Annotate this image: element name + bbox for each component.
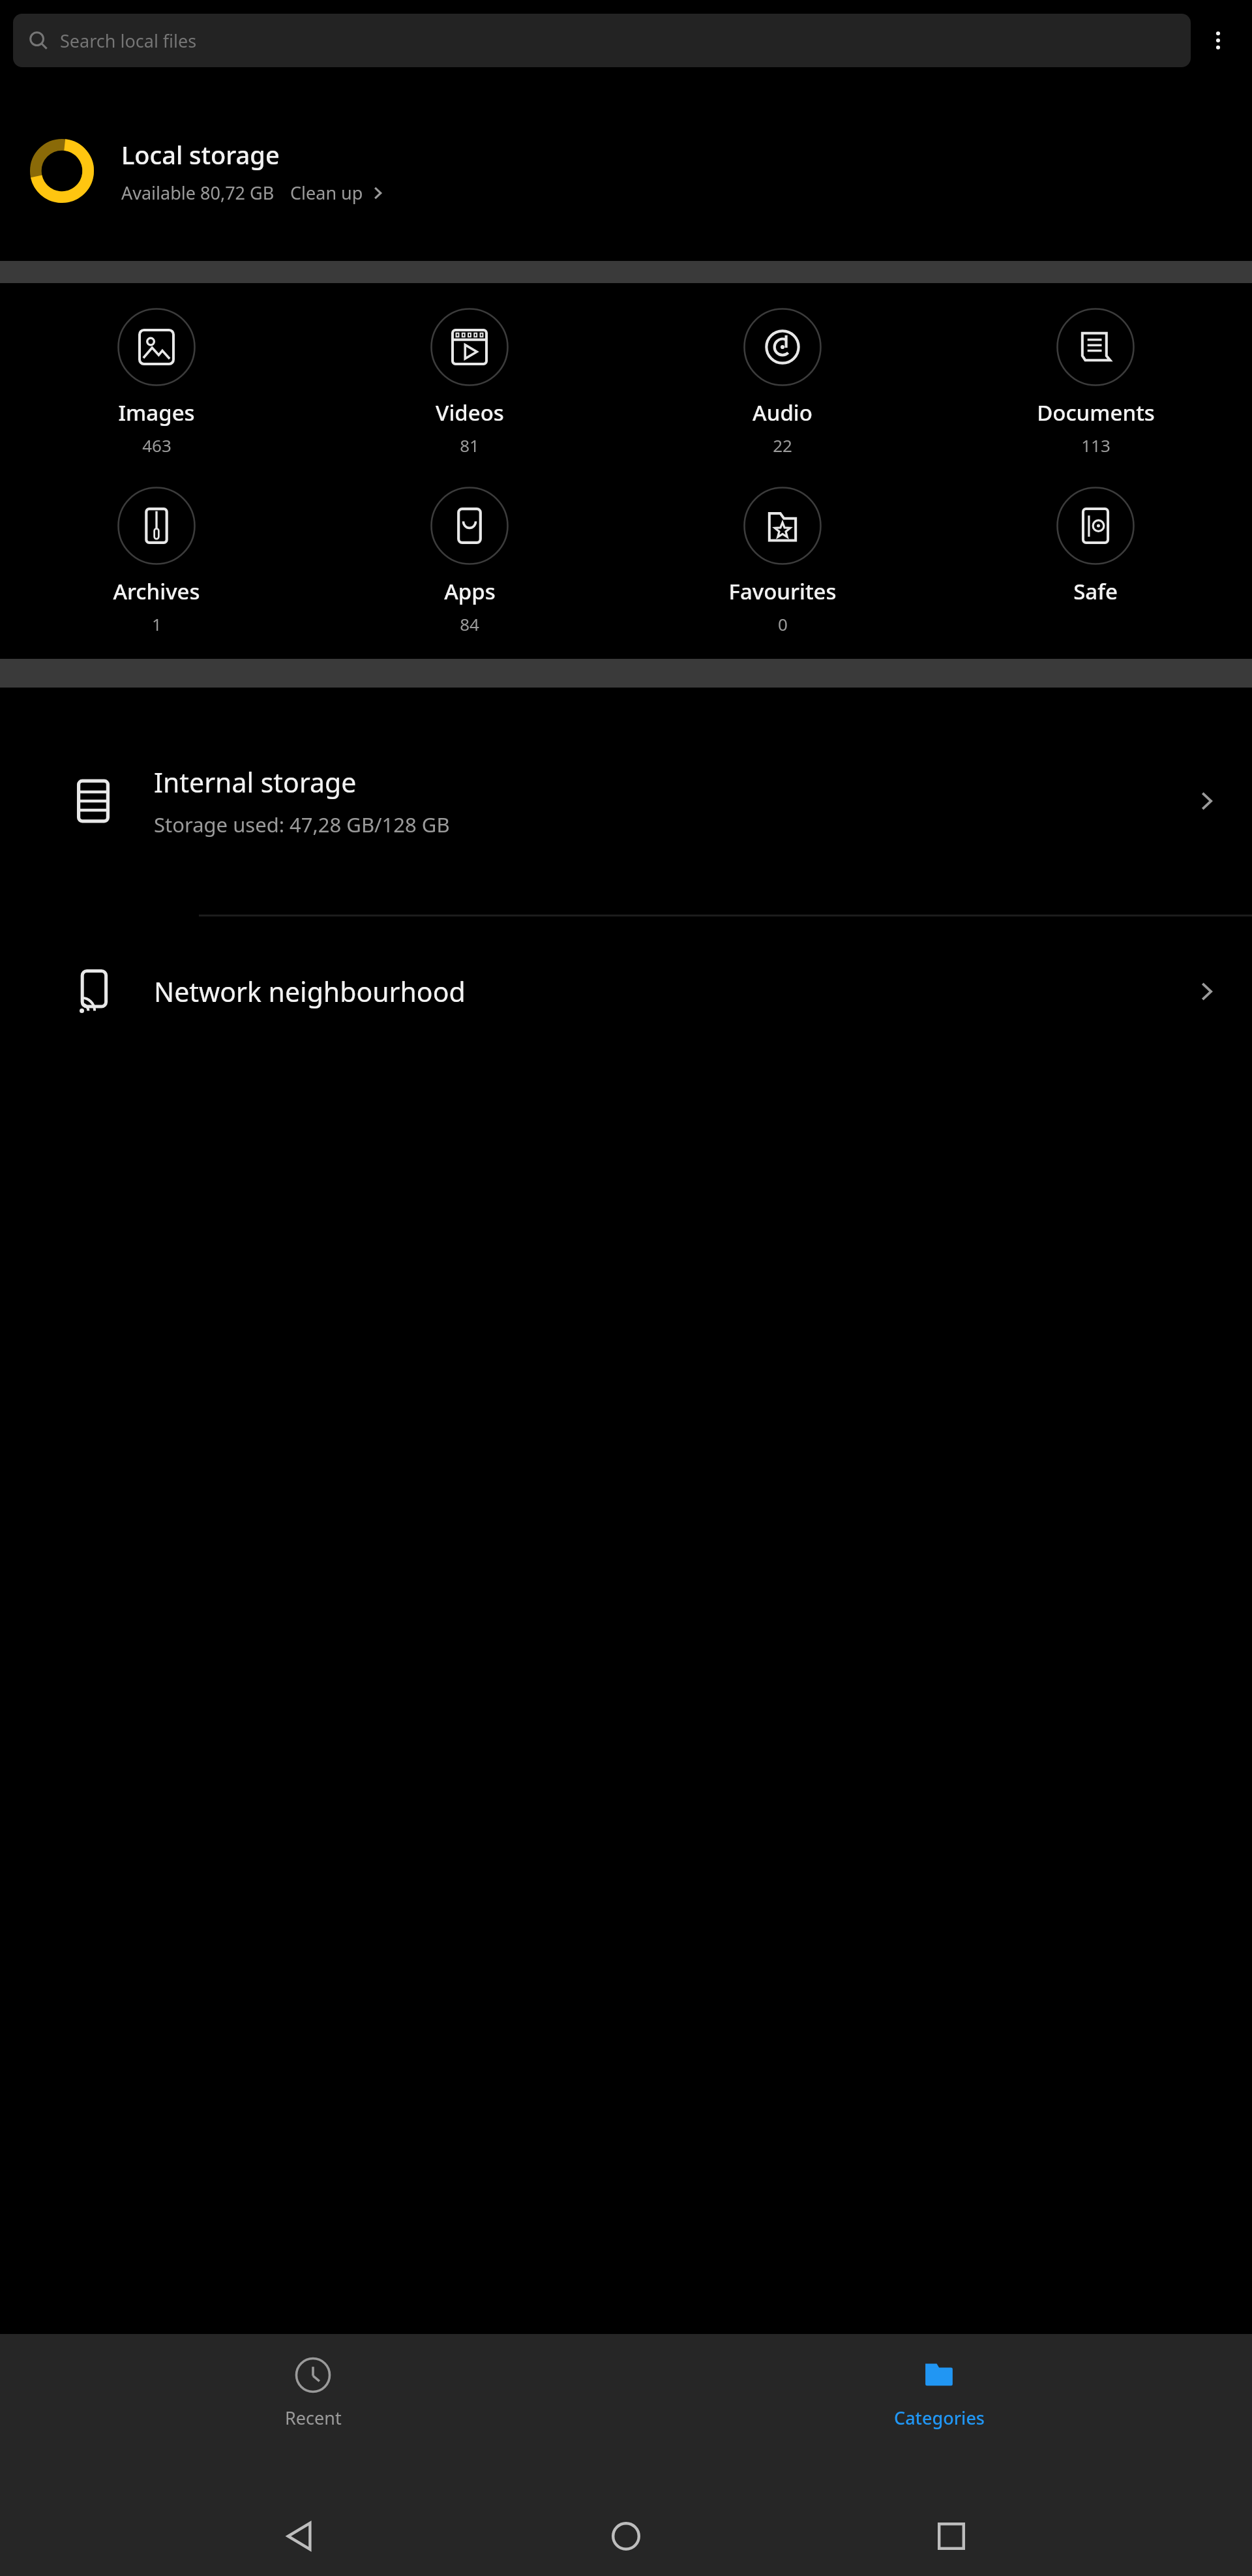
staticText: 113	[1081, 434, 1110, 457]
staticText: 1	[152, 613, 162, 635]
staticText: Recent	[285, 2406, 342, 2430]
button[interactable]: Safe	[939, 480, 1252, 613]
staticText: Favourites	[728, 577, 837, 606]
staticText: 463	[142, 434, 171, 457]
staticText: Network neighbourhood	[154, 973, 1195, 1010]
button[interactable]: Favourites	[626, 480, 939, 642]
staticText: Storage used: 47,28 GB/128 GB	[154, 811, 450, 838]
button[interactable]: Search local files	[13, 14, 1191, 67]
staticText: Apps	[444, 577, 496, 606]
button[interactable]: Back	[276, 2511, 325, 2561]
staticText: Archives	[113, 577, 200, 606]
staticText: Documents	[1037, 398, 1155, 427]
button[interactable]: Documents	[939, 301, 1252, 463]
staticText: Available 80,72 GB	[121, 181, 275, 205]
button[interactable]: Network neighbourhood	[0, 917, 1252, 1067]
staticText: 81	[460, 434, 479, 457]
button[interactable]: Images	[0, 301, 313, 463]
button[interactable]: Internal storage	[0, 688, 1252, 915]
staticText: 84	[460, 613, 479, 635]
button[interactable]: Recent	[0, 2334, 626, 2430]
staticText: Safe	[1073, 577, 1118, 606]
button[interactable]: Audio	[626, 301, 939, 463]
staticText: Videos	[436, 398, 504, 427]
staticText: Clean up	[290, 181, 363, 205]
staticText: Images	[118, 398, 195, 427]
staticText: Search local files	[60, 29, 197, 53]
button[interactable]: Home	[601, 2511, 651, 2561]
staticText: 0	[778, 613, 788, 635]
button[interactable]: Recents	[927, 2511, 976, 2561]
button[interactable]: Archives	[0, 480, 313, 642]
button[interactable]: Videos	[313, 301, 626, 463]
button[interactable]: Categories	[626, 2334, 1252, 2430]
staticText: Audio	[753, 398, 812, 427]
staticText: Internal storage	[154, 764, 357, 800]
button[interactable]: Local storage	[0, 81, 1252, 261]
button[interactable]: More options	[1191, 14, 1245, 67]
staticText: Local storage	[121, 138, 280, 172]
staticText: Categories	[894, 2406, 985, 2430]
staticText: 22	[773, 434, 792, 457]
button[interactable]: Apps	[313, 480, 626, 642]
